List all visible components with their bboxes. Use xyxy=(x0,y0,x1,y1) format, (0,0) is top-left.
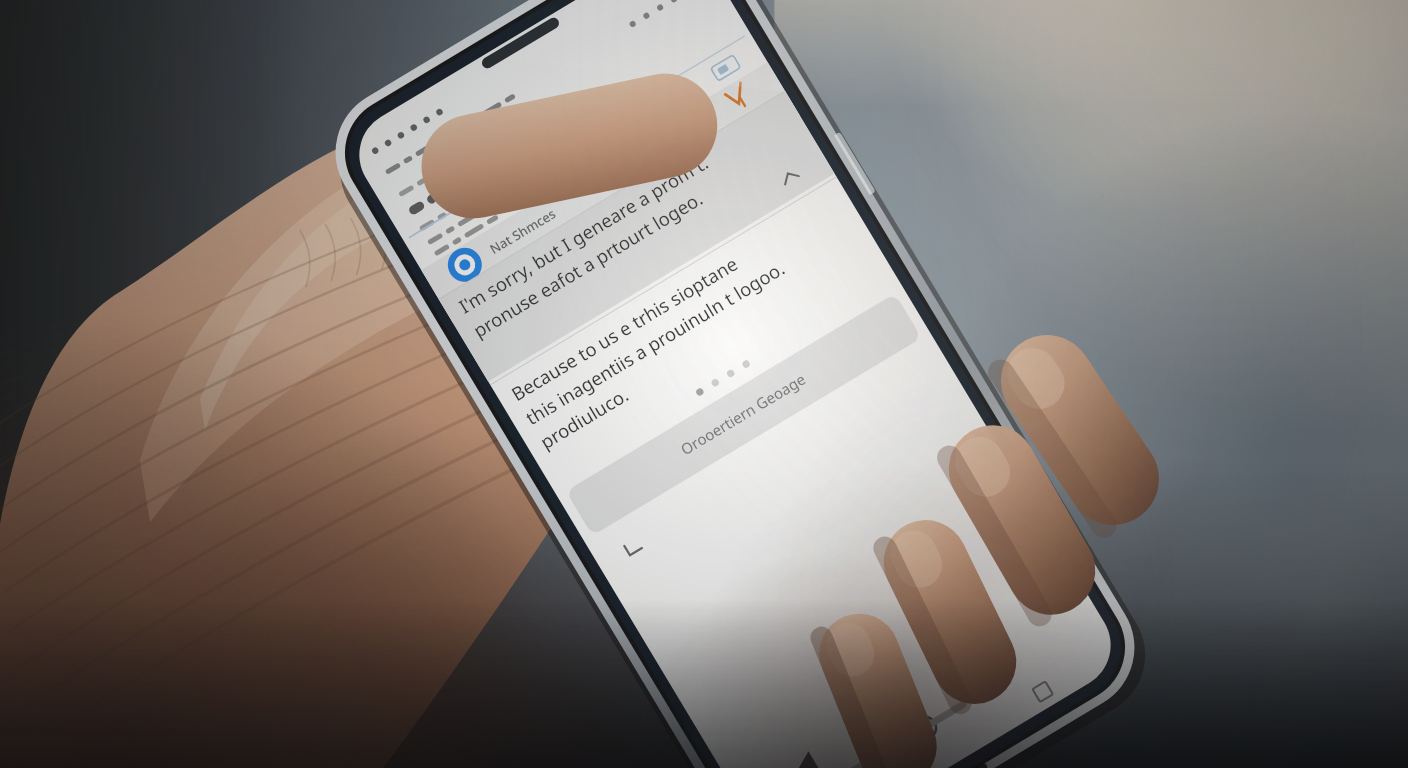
button[interactable]: Hand holding phone showing assistant cha… xyxy=(0,0,1408,768)
